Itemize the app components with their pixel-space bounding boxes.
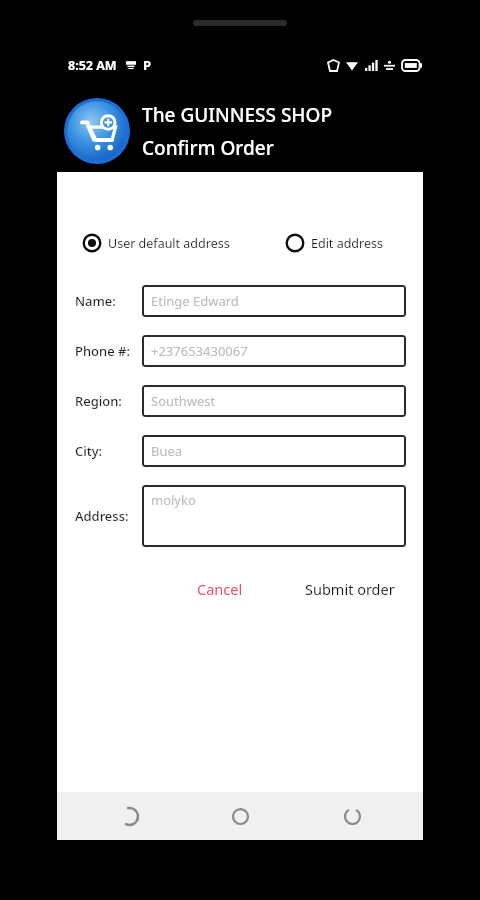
- button[interactable]: Submit order: [295, 573, 405, 605]
- button[interactable]: Home: [200, 792, 280, 840]
- staticText: 8:52 AM: [68, 57, 117, 74]
- staticText: Confirm Order: [142, 135, 274, 161]
- staticText: Edit address: [311, 235, 383, 252]
- staticText: molyko: [151, 491, 196, 509]
- button[interactable]: User default address: [81, 230, 232, 256]
- staticText: Address:: [75, 507, 129, 525]
- staticText: Etinge Edward: [151, 292, 239, 310]
- button[interactable]: Buea: [142, 435, 406, 467]
- staticText: +237653430067: [151, 342, 248, 360]
- staticText: User default address: [108, 235, 230, 252]
- staticText: Name:: [75, 292, 116, 310]
- staticText: City:: [75, 442, 103, 460]
- button[interactable]: Recents: [312, 792, 392, 840]
- staticText: The GUINNESS SHOP: [142, 102, 333, 128]
- staticText: Southwest: [151, 392, 216, 410]
- button[interactable]: Cancel: [187, 573, 253, 605]
- staticText: Region:: [75, 392, 122, 410]
- staticText: Cancel: [197, 579, 243, 599]
- button[interactable]: Southwest: [142, 385, 406, 417]
- button[interactable]: Edit address: [284, 230, 385, 256]
- button[interactable]: Etinge Edward: [142, 285, 406, 317]
- staticText: P: [143, 56, 152, 74]
- button[interactable]: Shop logo: [62, 96, 132, 166]
- button[interactable]: Back: [89, 792, 169, 840]
- button[interactable]: molyko: [142, 485, 406, 547]
- button[interactable]: +237653430067: [142, 335, 406, 367]
- staticText: Submit order: [305, 579, 395, 599]
- staticText: Buea: [151, 442, 183, 460]
- staticText: Phone #:: [75, 342, 130, 360]
